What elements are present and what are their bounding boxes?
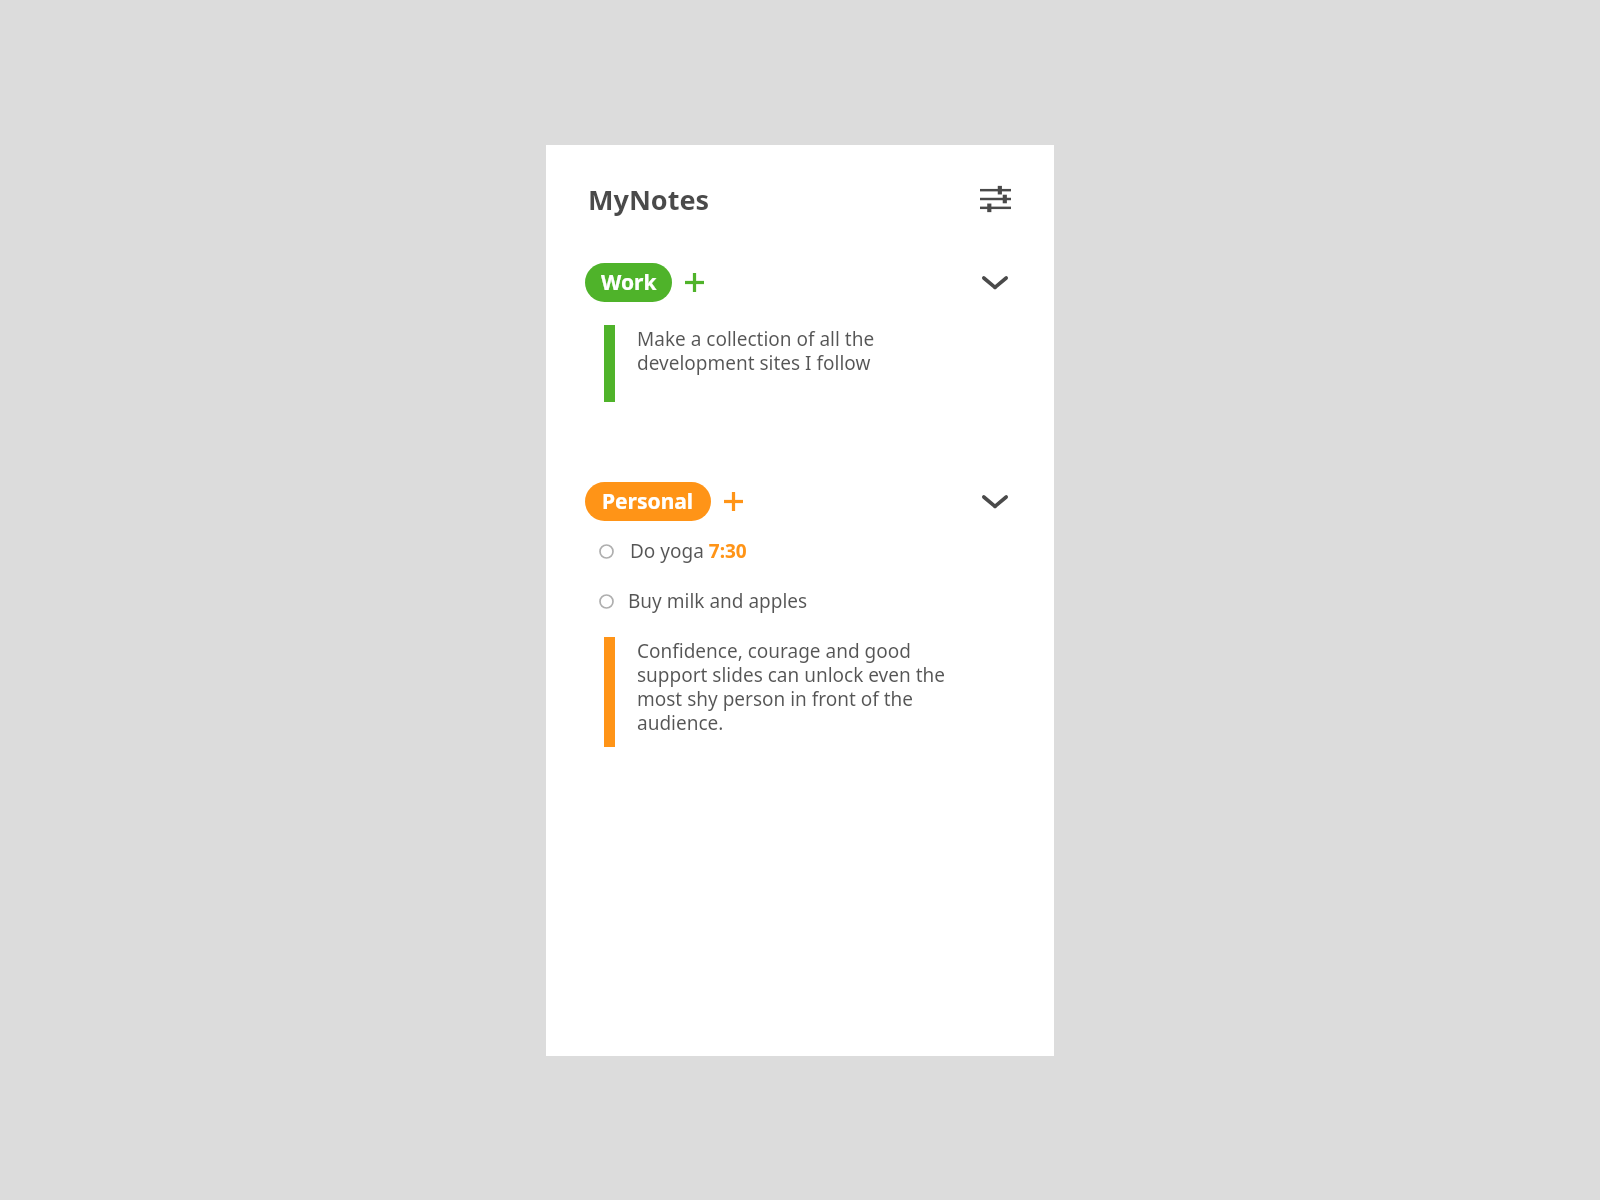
button[interactable]: Personal [585, 482, 711, 521]
button[interactable]: Do yoga 7:30 [585, 538, 1016, 564]
button[interactable]: Collapse Work [974, 261, 1016, 303]
staticText: Personal [602, 487, 694, 516]
button[interactable]: Make a collection of all the development… [604, 323, 1006, 402]
button[interactable]: Settings [974, 178, 1016, 220]
button[interactable]: Add Personal note [717, 485, 749, 517]
button[interactable]: Work [585, 263, 672, 302]
staticText: Do yoga 7:30 [630, 538, 747, 564]
staticText: Buy milk and apples [628, 588, 808, 614]
button[interactable]: Confidence, courage and good support sli… [604, 635, 1006, 747]
button[interactable]: Add Work note [678, 266, 710, 298]
staticText: Work [601, 268, 657, 297]
staticText: Confidence, courage and good support sli… [637, 638, 945, 735]
staticText: Make a collection of all the development… [637, 326, 875, 375]
staticText: MyNotes [588, 181, 710, 218]
button[interactable]: Collapse Personal [974, 480, 1016, 522]
button[interactable]: Buy milk and apples [585, 588, 1016, 614]
